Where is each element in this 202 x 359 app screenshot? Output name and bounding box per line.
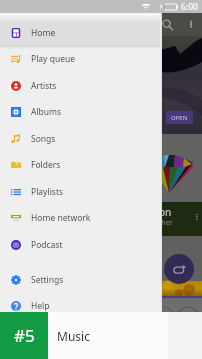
staticText: sher [158,218,173,228]
staticText: Folders [31,159,61,171]
button[interactable]: Help [0,292,161,319]
button[interactable]: Home network [0,204,161,231]
button[interactable]: More options [185,18,197,30]
button[interactable]: Artists [0,72,161,99]
staticText: Play queue [31,53,75,65]
staticText: Playlists [31,186,64,198]
button[interactable]: Albums [0,98,161,125]
button[interactable]: Folders [0,151,161,178]
button[interactable]: #5 [0,312,48,359]
button[interactable]: Search [161,18,175,32]
staticText: Help [31,300,50,312]
staticText: Songs [31,133,56,145]
staticText: on [159,205,172,219]
staticText: Albums [31,106,62,118]
staticText: Artists [31,80,57,92]
staticText: Podcast [31,239,63,251]
button[interactable]: Settings [0,266,161,293]
button[interactable]: Play queue [0,45,161,72]
staticText: #5 [14,324,35,347]
staticText: Settings [31,274,64,286]
button[interactable]: Shuffle [164,254,194,284]
staticText: OPEN [171,114,188,122]
staticText: Music [57,328,90,344]
button[interactable]: Podcast [0,231,161,258]
staticText: Home network [31,212,91,224]
button[interactable]: Playlists [0,178,161,205]
staticText: Home [31,27,56,39]
button[interactable]: Songs [0,125,161,152]
staticText: 6:00 [181,1,198,13]
button[interactable]: Home [0,19,161,46]
button[interactable]: OPEN [166,111,193,124]
